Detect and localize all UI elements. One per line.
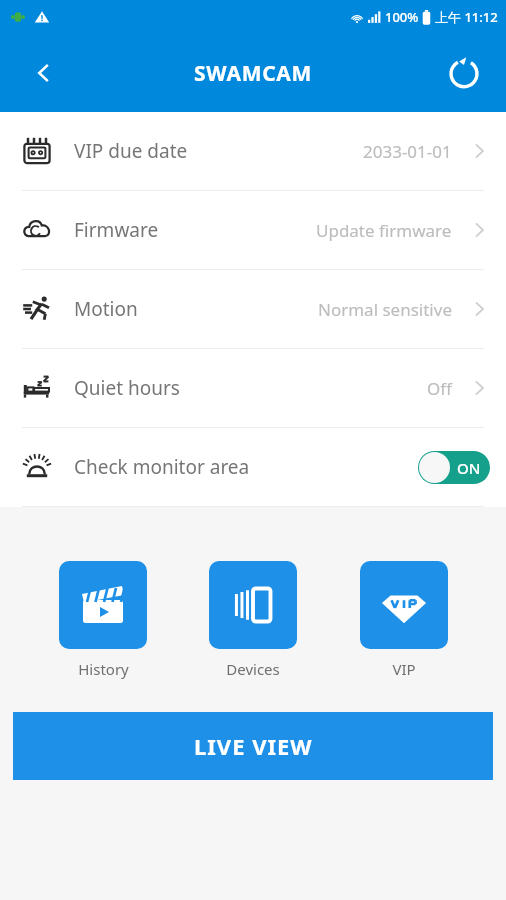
staticText: ON [457,458,481,478]
button[interactable]: LIVE VIEW [13,712,493,780]
button[interactable]: Motion [0,270,506,348]
staticText: Devices [226,659,280,679]
staticText: Update firmware [316,219,452,242]
button[interactable]: VIP due date [0,112,506,190]
staticText: SWAMCAM [194,59,313,88]
staticText: History [78,659,129,679]
staticText: VIP due date [74,138,188,164]
button[interactable]: Back [22,51,66,95]
staticText: 2033-01-01 [363,140,452,163]
staticText: Normal sensitive [318,298,452,321]
button[interactable]: Check monitor area toggle, on [418,451,490,484]
staticText: Quiet hours [74,375,180,401]
staticText: LIVE VIEW [194,731,313,761]
staticText: Firmware [74,217,159,243]
button[interactable]: History [55,561,151,679]
staticText: 100% [385,8,419,26]
button[interactable]: Check monitor area [0,428,506,506]
button[interactable]: Devices [205,561,301,679]
staticText: 上午 11:12 [435,8,498,26]
button[interactable]: VIP [356,561,452,679]
button[interactable]: Firmware [0,191,506,269]
button[interactable]: Refresh [438,47,490,99]
staticText: VIP [392,659,416,679]
staticText: Check monitor area [74,454,250,480]
staticText: Motion [74,296,138,322]
staticText: Off [427,377,452,400]
button[interactable]: Quiet hours [0,349,506,427]
